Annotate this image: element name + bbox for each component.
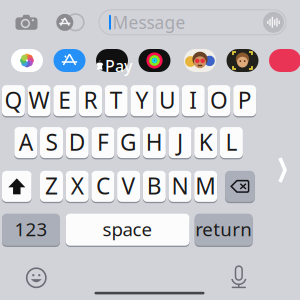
button[interactable]: E: [53, 84, 76, 117]
staticText: J: [177, 127, 183, 157]
staticText: W: [29, 85, 50, 115]
button[interactable]: Memoji: [226, 49, 258, 72]
button[interactable]: G: [117, 126, 140, 159]
button[interactable]: Emoji: [26, 267, 47, 288]
button[interactable]: K: [194, 126, 217, 159]
button[interactable]: B: [143, 170, 166, 202]
staticText: V: [122, 171, 136, 201]
staticText: A: [19, 127, 33, 157]
button[interactable]: C: [91, 170, 114, 202]
staticText: Z: [45, 171, 58, 201]
button[interactable]: App Store: [53, 49, 85, 72]
staticText: O: [210, 85, 228, 115]
button[interactable]: Q: [2, 84, 25, 117]
button[interactable]: space: [66, 213, 190, 246]
button[interactable]: Expand keyboard: [278, 156, 287, 184]
staticText: Y: [135, 85, 148, 115]
button[interactable]: W: [28, 84, 51, 117]
button[interactable]: Camera: [15, 15, 37, 30]
button[interactable]: U: [156, 84, 179, 117]
staticText: B: [147, 171, 162, 201]
button[interactable]: I: [182, 84, 205, 117]
staticText: M: [195, 171, 216, 201]
staticText: 123: [14, 217, 47, 241]
staticText: D: [69, 127, 86, 157]
button[interactable]: O: [207, 84, 230, 117]
button[interactable]: T: [105, 84, 128, 117]
staticText: H: [146, 127, 163, 157]
staticText: S: [45, 127, 57, 157]
button[interactable]: Photos: [11, 49, 43, 72]
button[interactable]: X: [66, 170, 89, 202]
button[interactable]: M: [194, 170, 217, 202]
button[interactable]: L: [220, 126, 243, 159]
staticText: space: [103, 217, 153, 241]
button[interactable]: Delete: [225, 170, 255, 202]
staticText: return: [195, 217, 252, 241]
staticText: F: [97, 127, 109, 157]
button[interactable]: D: [66, 126, 89, 159]
button[interactable]: Y: [130, 84, 153, 117]
button[interactable]: H: [143, 126, 166, 159]
staticText: I: [189, 85, 197, 115]
button[interactable]: Images: [269, 49, 300, 72]
button[interactable]: A: [14, 126, 37, 159]
button[interactable]: Z: [40, 170, 63, 202]
button[interactable]: Fitness: [138, 49, 170, 72]
button[interactable]: N: [168, 170, 191, 202]
button[interactable]: App Store: [56, 14, 73, 31]
staticText: N: [171, 171, 188, 201]
staticText: E: [58, 85, 71, 115]
button[interactable]: F: [91, 126, 114, 159]
staticText: Message: [112, 11, 185, 34]
button[interactable]: J: [168, 126, 191, 159]
button[interactable]: return: [195, 213, 253, 246]
staticText: T: [110, 85, 123, 115]
button[interactable]: S: [40, 126, 63, 159]
button[interactable]: Photo: [184, 49, 216, 72]
staticText: Q: [4, 85, 22, 115]
button[interactable]: Message: [99, 10, 286, 35]
staticText: K: [199, 127, 213, 157]
staticText: R: [83, 85, 97, 115]
button[interactable]: R: [79, 84, 102, 117]
button[interactable]: V: [117, 170, 140, 202]
staticText: U: [159, 85, 176, 115]
staticText: C: [96, 171, 110, 201]
staticText: G: [120, 127, 137, 157]
button[interactable]: Apple Pay: [96, 49, 128, 72]
button[interactable]: 123: [2, 213, 60, 246]
staticText: L: [225, 127, 237, 157]
staticText: P: [238, 85, 252, 115]
staticText: Pay: [105, 55, 132, 76]
button[interactable]: P: [233, 84, 256, 117]
button[interactable]: Shift: [2, 170, 32, 202]
button[interactable]: Dictate: [231, 266, 246, 288]
staticText: X: [71, 171, 84, 201]
